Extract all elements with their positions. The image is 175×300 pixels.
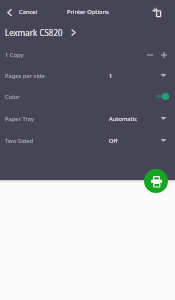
staticText: Off bbox=[109, 137, 118, 145]
staticText: 1 bbox=[109, 72, 113, 80]
button[interactable]: Color bbox=[0, 86, 175, 107]
staticText: Lexmark CS820 bbox=[5, 27, 63, 38]
staticText: Two-Sided bbox=[5, 137, 34, 145]
button[interactable]: Print bbox=[144, 169, 168, 193]
button[interactable]: Two-Sided bbox=[0, 130, 175, 151]
button[interactable]: Pages per side bbox=[0, 65, 175, 86]
button[interactable]: Paper Tray bbox=[0, 108, 175, 129]
staticText: Cancel bbox=[19, 8, 38, 16]
button[interactable]: Increase copies bbox=[157, 48, 171, 62]
button[interactable]: Cancel bbox=[3, 4, 40, 20]
button[interactable]: Print preview bbox=[147, 2, 167, 22]
staticText: Automatic bbox=[109, 115, 137, 123]
button[interactable]: Lexmark CS820 bbox=[0, 24, 175, 41]
staticText: Paper Tray bbox=[5, 115, 34, 123]
staticText: Printer Options bbox=[67, 8, 109, 16]
staticText: Pages per side bbox=[5, 72, 45, 80]
button[interactable]: Decrease copies bbox=[143, 48, 157, 62]
staticText: 1 Copy bbox=[5, 51, 24, 59]
staticText: Color bbox=[5, 93, 20, 101]
